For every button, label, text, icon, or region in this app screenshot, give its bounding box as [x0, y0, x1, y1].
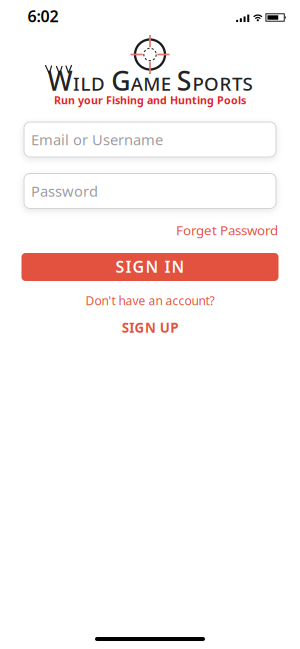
button[interactable]: Forget Password — [176, 221, 278, 239]
staticText: SIGN UP — [122, 319, 178, 336]
staticText: SIGN IN — [115, 256, 184, 277]
staticText: 6:02 — [27, 5, 58, 27]
button[interactable] — [21, 253, 278, 281]
button[interactable]: SIGN UP — [122, 319, 178, 336]
staticText: Don't have an account? — [85, 292, 214, 308]
staticText: WILD GAME SPORTS — [47, 63, 253, 98]
button[interactable]: Email or Username — [23, 121, 276, 157]
staticText: Run your Fishing and Hunting Pools — [54, 93, 246, 107]
staticText: Forget Password — [176, 221, 278, 239]
staticText: Email or Username — [31, 130, 163, 149]
button[interactable]: Password — [23, 173, 276, 209]
staticText: Password — [31, 181, 98, 201]
